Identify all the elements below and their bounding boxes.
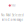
staticText: No Mail Selected <box>1 13 24 17</box>
staticText: Select a message <box>1 18 23 21</box>
staticText: Mail <box>11 4 16 7</box>
